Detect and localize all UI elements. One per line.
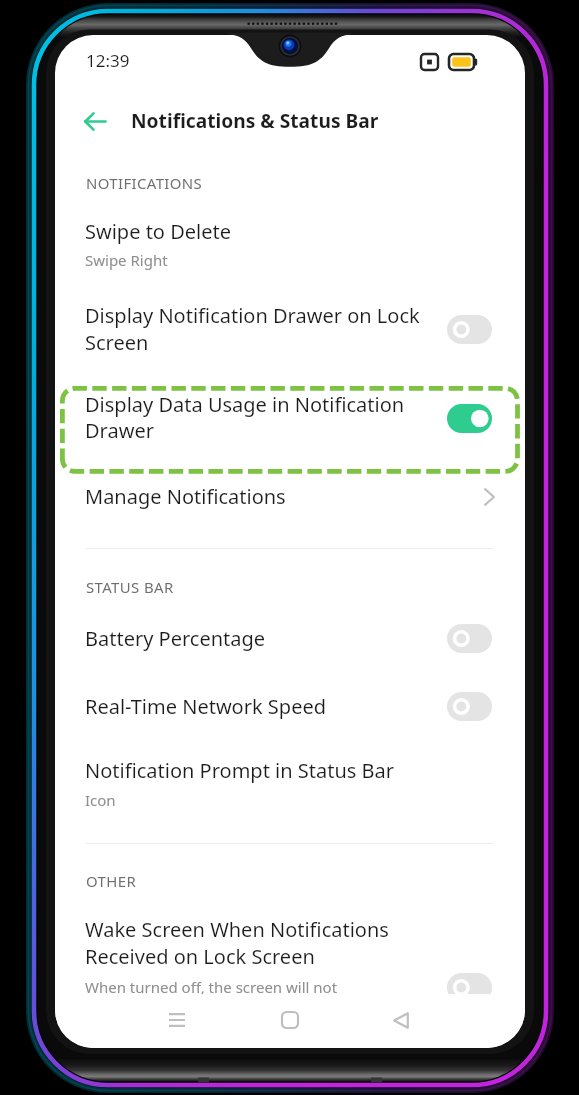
button[interactable]: Display Data Usage in Notification [55,390,525,420]
button[interactable]: Battery Percentage [55,624,525,654]
staticText: Icon [85,790,116,810]
button[interactable]: Notification Prompt in Status Bar [55,756,525,786]
staticText: Notifications & Status Bar [131,107,379,133]
staticText: Notification Prompt in Status Bar [85,757,395,784]
button[interactable]: Received on Lock Screen [55,942,525,972]
button[interactable]: Swipe to Delete [55,217,525,247]
button[interactable]: Screen [55,328,525,358]
staticText: Manage Notifications [85,483,286,510]
staticText: Drawer [85,417,154,444]
staticText: Received on Lock Screen [85,943,315,970]
staticText: NOTIFICATIONS [86,173,203,193]
button[interactable]: Toggle off [447,315,492,344]
staticText: Swipe Right [85,250,168,270]
button[interactable]: Real-Time Network Speed [55,692,525,722]
button[interactable]: Back [69,95,121,147]
button[interactable]: Display Notification Drawer on Lock [55,301,525,331]
staticText: STATUS BAR [86,577,174,597]
button[interactable]: Toggle on [447,404,492,433]
staticText: Display Data Usage in Notification [85,391,405,418]
staticText: OTHER [86,871,137,891]
staticText: 12:39 [86,49,130,72]
staticText: Real-Time Network Speed [85,693,326,720]
staticText: Battery Percentage [85,625,266,652]
button[interactable]: Home [267,997,313,1043]
staticText: Display Notification Drawer on Lock [85,302,420,329]
button[interactable]: Drawer [55,416,525,446]
staticText: Screen [85,329,149,356]
button[interactable]: Recent apps [154,997,200,1043]
button[interactable]: Back [378,997,424,1043]
button[interactable]: Manage Notifications [55,482,525,512]
button[interactable]: Toggle off [447,692,492,721]
button[interactable]: Toggle off [447,624,492,653]
staticText: Wake Screen When Notifications [85,916,389,943]
staticText: Swipe to Delete [85,218,231,245]
button[interactable]: Wake Screen When Notifications [55,915,525,945]
button[interactable]: Toggle off [447,973,492,1002]
staticText: When turned off, the screen will not [85,977,338,997]
